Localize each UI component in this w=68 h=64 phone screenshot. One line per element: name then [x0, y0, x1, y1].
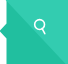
button[interactable]: Search: [0, 0, 68, 64]
